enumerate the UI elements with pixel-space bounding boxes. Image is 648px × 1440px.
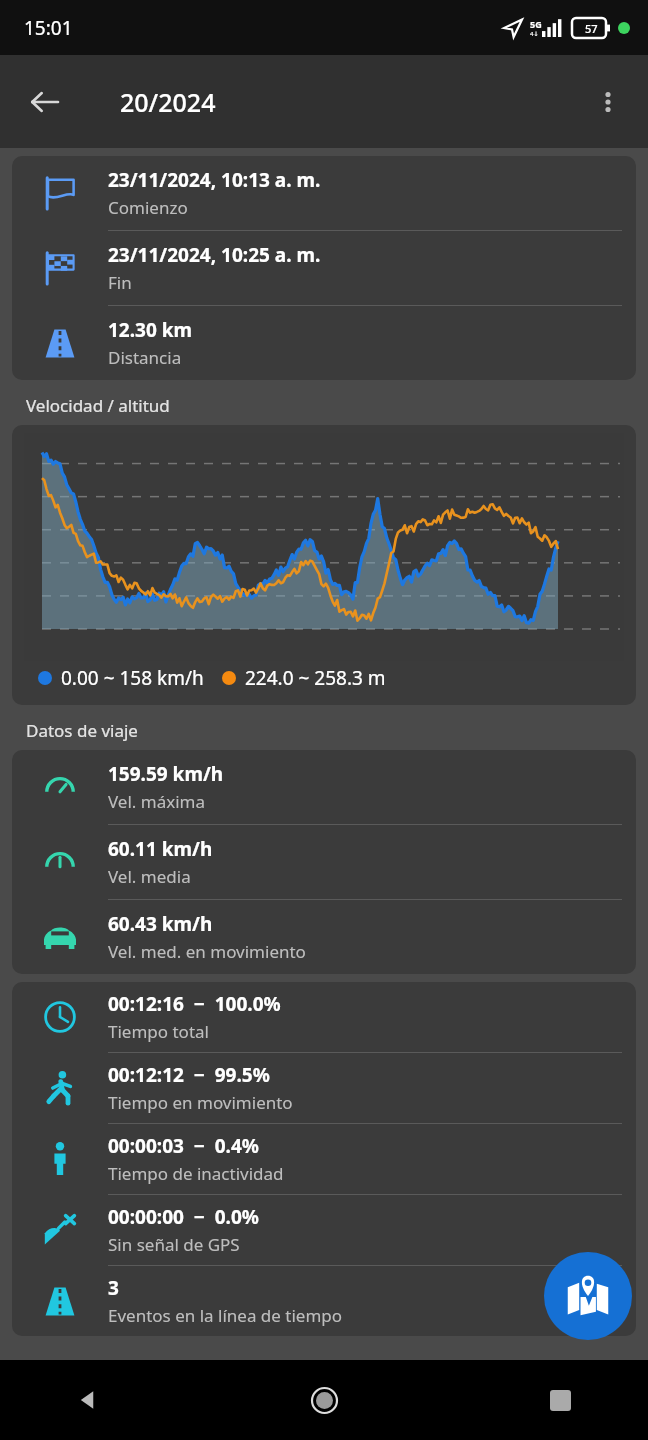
staticText: 20/2024: [120, 85, 216, 119]
staticText: 5G: [530, 18, 542, 30]
staticText: 60.43 km/h: [108, 911, 213, 937]
button[interactable]: Show map: [544, 1252, 632, 1340]
staticText: 0.00 ~ 158 km/h: [61, 665, 204, 691]
button[interactable]: 23/11/2024, 10:25 a. m.: [12, 230, 636, 305]
staticText: Tiempo en movimiento: [108, 1091, 293, 1114]
staticText: 00:00:00 − 0.0%: [108, 1204, 259, 1230]
staticText: Velocidad / altitud: [26, 394, 170, 417]
staticText: 12.30 km: [108, 317, 193, 343]
button[interactable]: Recents: [532, 1372, 588, 1428]
staticText: 15:01: [24, 15, 73, 41]
staticText: 00:12:16 − 100.0%: [108, 991, 281, 1017]
button[interactable]: 23/11/2024, 10:13 a. m.: [12, 156, 636, 230]
staticText: 00:00:03 − 0.4%: [108, 1133, 259, 1159]
staticText: 4↓: [530, 30, 539, 38]
staticText: Distancia: [108, 346, 182, 369]
button[interactable]: Back: [16, 74, 72, 130]
staticText: 23/11/2024, 10:25 a. m.: [108, 242, 321, 268]
staticText: Tiempo de inactividad: [108, 1162, 284, 1185]
staticText: Sin señal de GPS: [108, 1233, 240, 1256]
staticText: Tiempo total: [108, 1020, 209, 1043]
button[interactable]: 00:00:00 − 0.0%: [12, 1194, 636, 1265]
staticText: Vel. med. en movimiento: [108, 940, 306, 963]
staticText: Eventos en la línea de tiempo: [108, 1304, 343, 1327]
button[interactable]: Home: [296, 1372, 352, 1428]
staticText: 159.59 km/h: [108, 761, 224, 787]
staticText: 57: [585, 21, 598, 36]
button[interactable]: 3: [12, 1265, 636, 1336]
button[interactable]: 00:00:03 − 0.4%: [12, 1123, 636, 1194]
button[interactable]: 12.30 km: [12, 305, 636, 380]
button[interactable]: 60.11 km/h: [12, 824, 636, 899]
staticText: Vel. máxima: [108, 790, 206, 813]
button[interactable]: More options: [580, 74, 636, 130]
staticText: 23/11/2024, 10:13 a. m.: [108, 167, 321, 193]
staticText: Comienzo: [108, 196, 188, 219]
staticText: Vel. media: [108, 865, 191, 888]
button[interactable]: 159.59 km/h: [12, 750, 636, 824]
button[interactable]: 00:12:12 − 99.5%: [12, 1052, 636, 1123]
button[interactable]: Back: [60, 1372, 116, 1428]
staticText: 00:12:12 − 99.5%: [108, 1062, 270, 1088]
button[interactable]: 60.43 km/h: [12, 899, 636, 974]
staticText: 224.0 ~ 258.3 m: [245, 665, 386, 691]
staticText: 60.11 km/h: [108, 836, 213, 862]
staticText: 3: [108, 1275, 119, 1301]
button[interactable]: 00:12:16 − 100.0%: [12, 982, 636, 1052]
staticText: Fin: [108, 271, 132, 294]
staticText: Datos de viaje: [26, 719, 138, 742]
